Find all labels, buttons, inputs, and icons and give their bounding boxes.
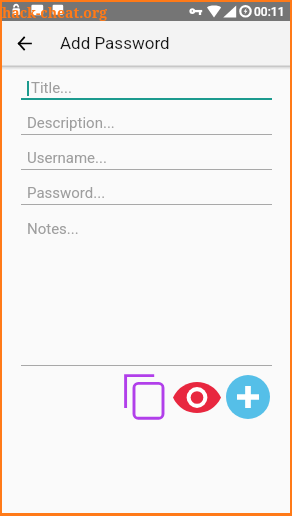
- staticText: Description...: [27, 114, 115, 132]
- button[interactable]: Add: [226, 375, 270, 419]
- staticText: Add Password: [60, 33, 170, 53]
- staticText: 00:11: [254, 5, 285, 19]
- staticText: Username...: [27, 149, 107, 167]
- staticText: Title...: [31, 79, 72, 97]
- staticText: Password...: [27, 184, 106, 202]
- staticText: Notes...: [27, 220, 79, 238]
- button[interactable]: Password...: [21, 182, 272, 204]
- button[interactable]: Title...: [21, 77, 272, 99]
- button[interactable]: Username...: [21, 147, 272, 169]
- button[interactable]: Notes...: [27, 218, 272, 240]
- button[interactable]: Show password: [171, 380, 223, 415]
- staticText: hack-cheat.org: [2, 3, 108, 22]
- button[interactable]: Copy: [123, 372, 167, 422]
- button[interactable]: Back: [10, 29, 38, 57]
- button[interactable]: Description...: [21, 112, 272, 134]
